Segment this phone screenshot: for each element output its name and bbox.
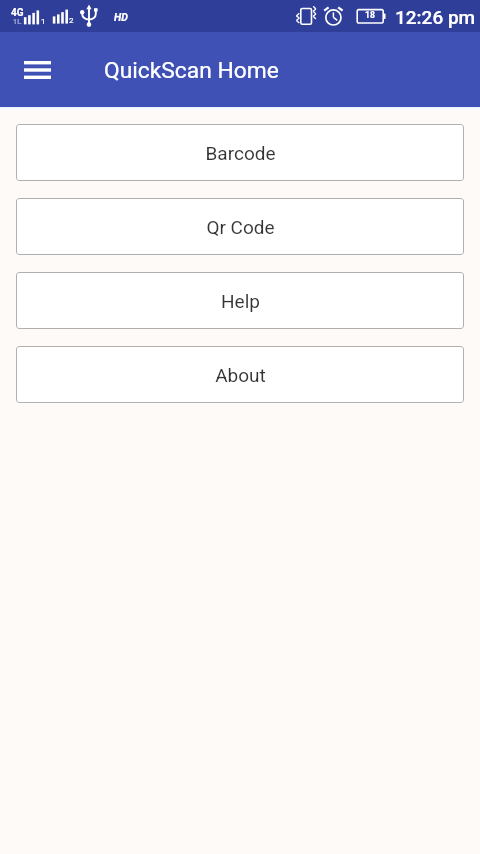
staticText: Qr Code: [206, 216, 275, 238]
staticText: Help: [221, 290, 260, 312]
button[interactable]: Barcode: [16, 124, 464, 181]
staticText: QuickScan Home: [104, 57, 279, 84]
button[interactable]: Open navigation drawer: [13, 46, 61, 94]
staticText: 18: [365, 10, 375, 20]
staticText: 4G: [11, 7, 24, 19]
button[interactable]: Help: [16, 272, 464, 329]
staticText: 12:26 pm: [395, 6, 476, 28]
staticText: About: [215, 364, 266, 386]
staticText: Barcode: [205, 142, 276, 164]
staticText: 2: [69, 16, 74, 25]
staticText: 1: [41, 17, 46, 26]
staticText: HD: [114, 11, 128, 23]
button[interactable]: About: [16, 346, 464, 403]
button[interactable]: Qr Code: [16, 198, 464, 255]
staticText: 1L: [13, 17, 22, 26]
